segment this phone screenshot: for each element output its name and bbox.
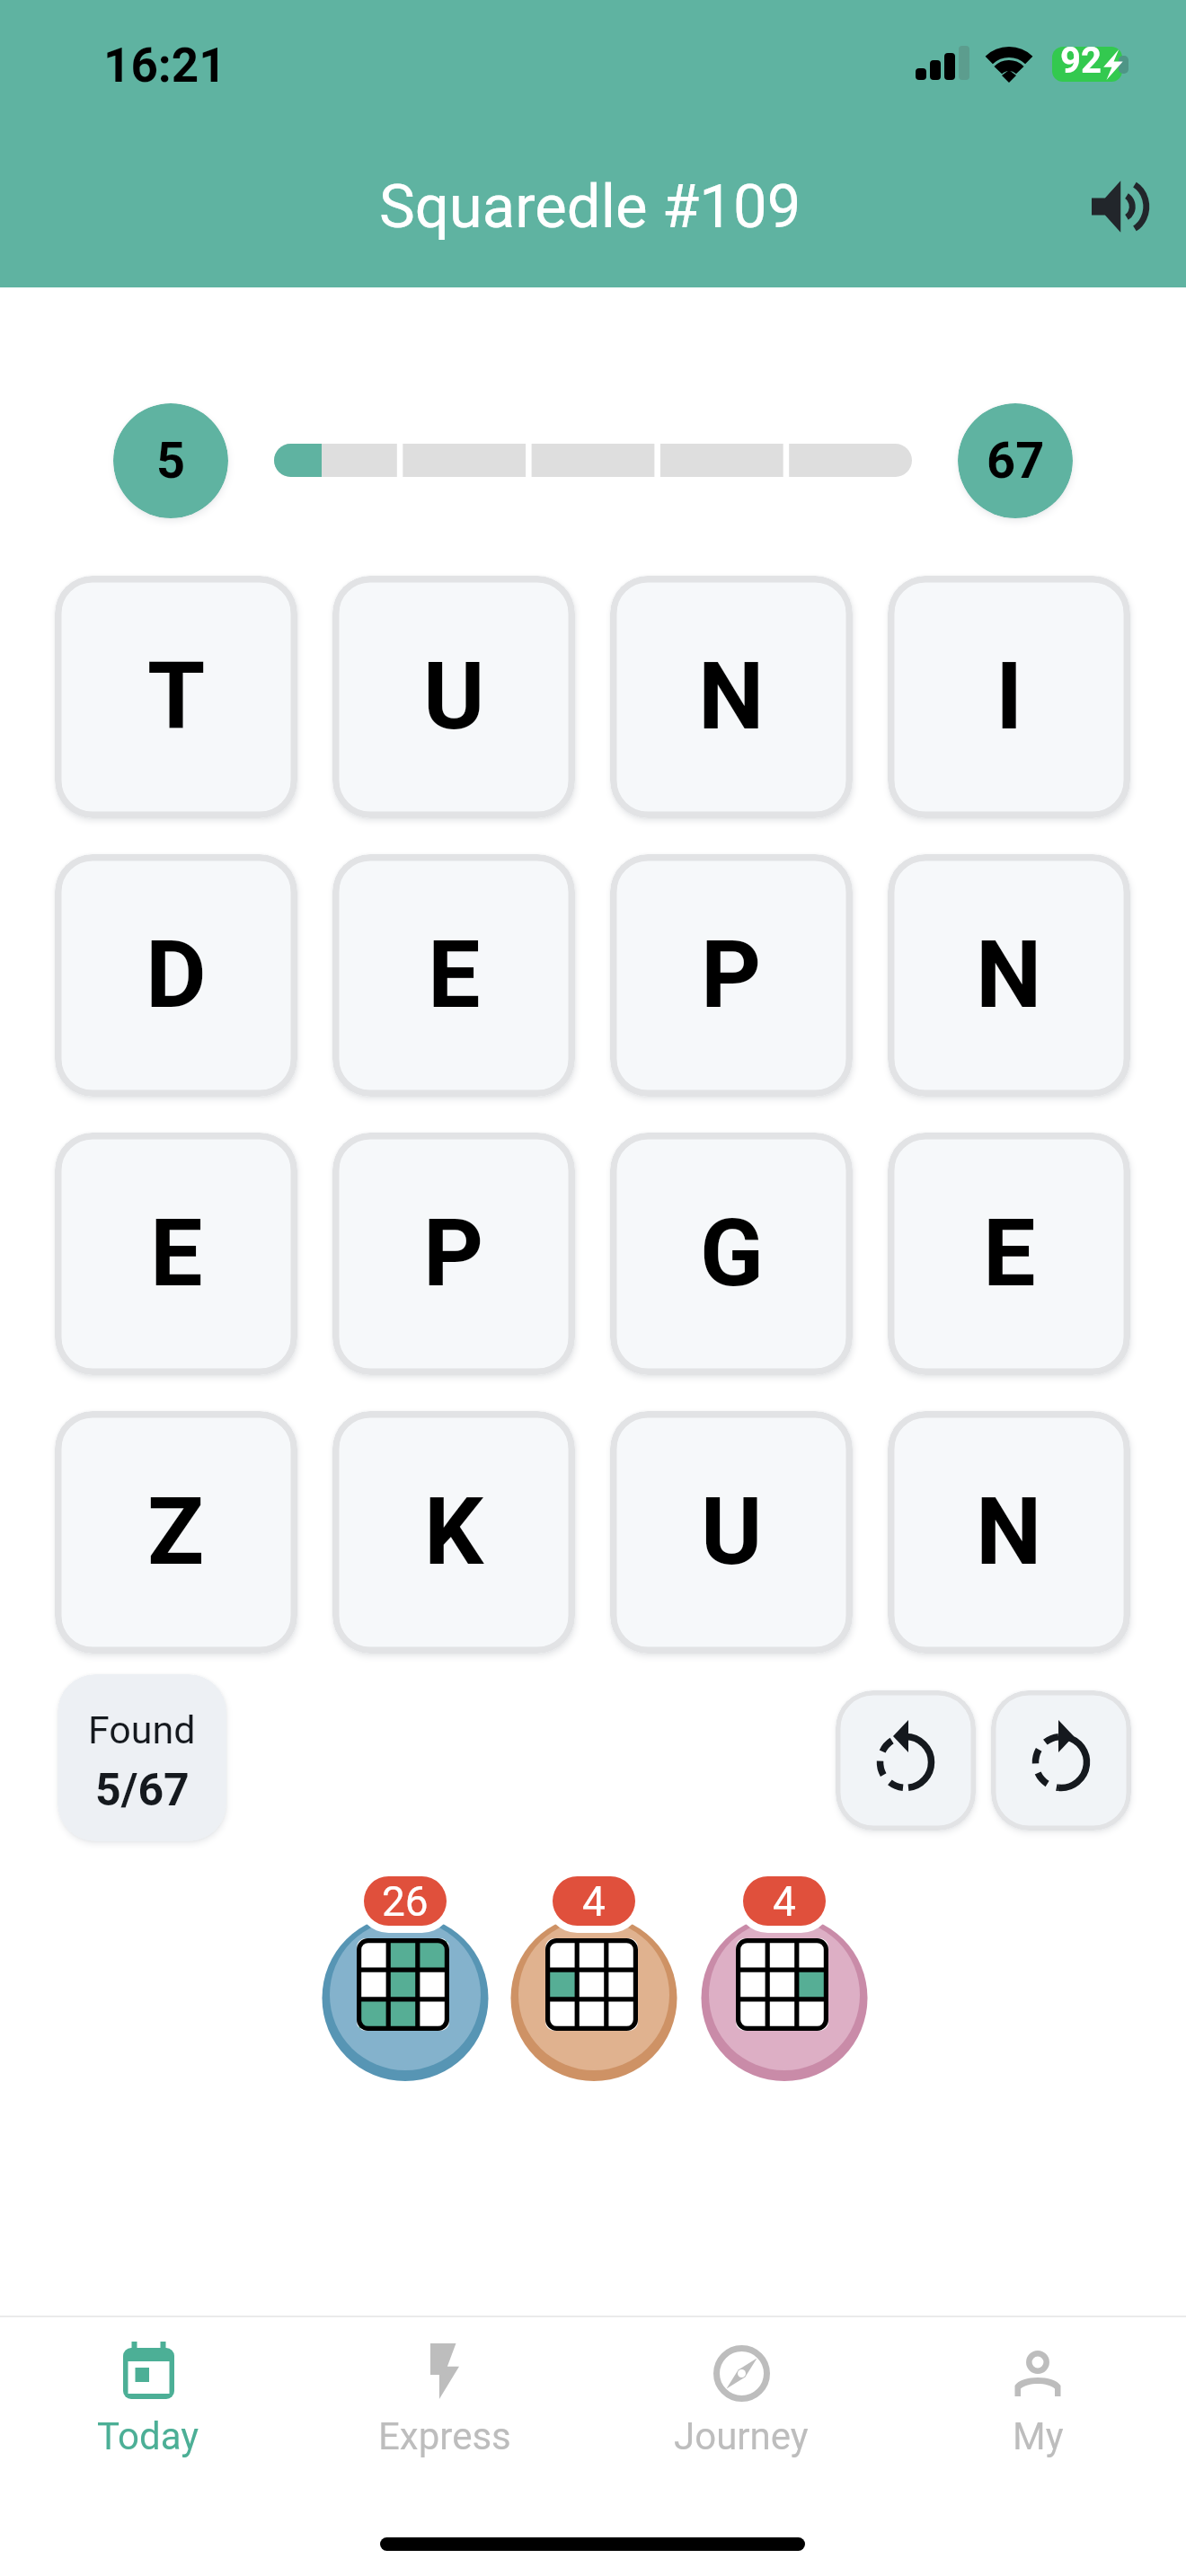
- staticText: 5/67: [95, 1764, 190, 1817]
- button[interactable]: Found: [58, 1674, 226, 1841]
- button[interactable]: Puzzle 4: [510, 1913, 677, 2084]
- button[interactable]: E: [55, 1133, 297, 1375]
- staticText: E: [150, 1199, 203, 1309]
- staticText: Today: [97, 2414, 199, 2458]
- button[interactable]: I: [888, 576, 1130, 818]
- staticText: T: [147, 642, 206, 752]
- button[interactable]: Puzzle 26: [322, 1913, 489, 2084]
- staticText: 4: [582, 1877, 606, 1926]
- staticText: P: [423, 1199, 484, 1309]
- button[interactable]: T: [55, 576, 297, 818]
- button[interactable]: Today: [0, 2317, 296, 2506]
- staticText: Found: [88, 1707, 196, 1752]
- button[interactable]: Redo: [991, 1690, 1131, 1831]
- staticText: Squaredle #109: [379, 172, 801, 243]
- staticText: 26: [382, 1877, 429, 1926]
- button[interactable]: G: [610, 1133, 853, 1375]
- button[interactable]: E: [332, 854, 575, 1097]
- button[interactable]: N: [888, 854, 1130, 1097]
- staticText: 16:21: [103, 38, 226, 93]
- button[interactable]: 5: [113, 403, 228, 518]
- button[interactable]: My: [889, 2317, 1186, 2506]
- button[interactable]: Undo: [836, 1690, 976, 1831]
- button[interactable]: K: [332, 1411, 575, 1654]
- button[interactable]: N: [610, 576, 853, 818]
- staticText: 67: [987, 431, 1045, 490]
- staticText: N: [976, 921, 1042, 1030]
- button[interactable]: Express: [296, 2317, 593, 2506]
- button[interactable]: Sound: [1082, 169, 1157, 244]
- staticText: E: [983, 1199, 1036, 1309]
- staticText: D: [146, 921, 207, 1030]
- staticText: 5: [156, 431, 186, 490]
- button[interactable]: D: [55, 854, 297, 1097]
- staticText: N: [976, 1478, 1042, 1587]
- staticText: P: [701, 921, 762, 1030]
- button[interactable]: Journey: [593, 2317, 889, 2506]
- staticText: N: [698, 642, 765, 752]
- staticText: Z: [147, 1478, 205, 1587]
- button[interactable]: P: [610, 854, 853, 1097]
- button[interactable]: N: [888, 1411, 1130, 1654]
- staticText: My: [1013, 2414, 1064, 2458]
- button[interactable]: Puzzle 4: [701, 1913, 868, 2084]
- button[interactable]: E: [888, 1133, 1130, 1375]
- staticText: Journey: [674, 2414, 809, 2458]
- button[interactable]: 67: [958, 403, 1073, 518]
- staticText: I: [996, 642, 1023, 752]
- staticText: 92: [1060, 40, 1102, 82]
- staticText: K: [424, 1478, 484, 1587]
- staticText: U: [423, 642, 485, 752]
- staticText: 4: [773, 1877, 796, 1926]
- button[interactable]: U: [610, 1411, 853, 1654]
- staticText: Express: [378, 2414, 511, 2458]
- button[interactable]: P: [332, 1133, 575, 1375]
- staticText: E: [428, 921, 481, 1030]
- staticText: U: [701, 1478, 763, 1587]
- button[interactable]: U: [332, 576, 575, 818]
- button[interactable]: Z: [55, 1411, 297, 1654]
- staticText: G: [700, 1199, 764, 1309]
